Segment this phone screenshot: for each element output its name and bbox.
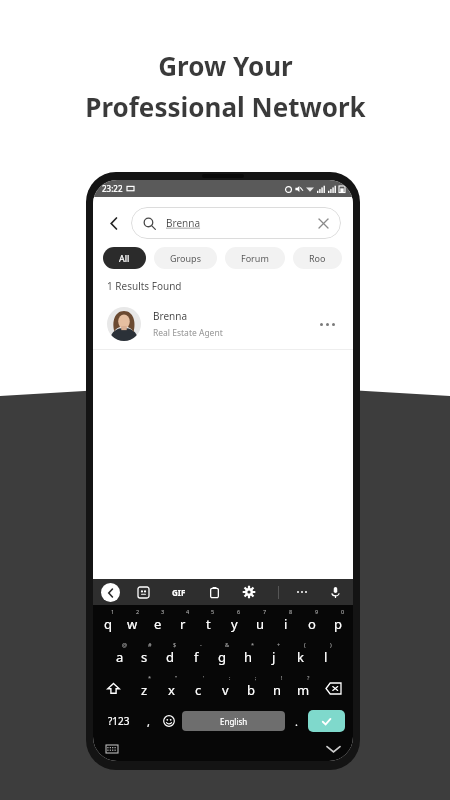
staticText: * [251, 641, 255, 648]
button[interactable]: Emoji [158, 709, 180, 733]
staticText: ?123 [108, 714, 130, 728]
staticText: s [141, 648, 148, 666]
staticText: m [297, 681, 310, 699]
staticText: n [273, 681, 282, 699]
button[interactable]: Hide keyboard [323, 739, 343, 759]
button[interactable]: 1 [95, 609, 120, 635]
button[interactable]: 3 [145, 609, 170, 635]
staticText: 23:22 [102, 183, 123, 194]
staticText: g [218, 648, 226, 666]
staticText: . [295, 714, 298, 729]
staticText: l [324, 648, 328, 666]
button[interactable]: 8 [273, 609, 299, 635]
button[interactable]: * [235, 642, 261, 668]
button[interactable]: Brenna [93, 303, 353, 349]
button[interactable]: Shift [96, 675, 131, 701]
staticText: Brenna [166, 216, 201, 230]
button[interactable]: - [183, 642, 209, 668]
button[interactable]: 9 [299, 609, 325, 635]
staticText: 1 Results Found [107, 279, 182, 293]
button[interactable]: ? [290, 675, 316, 701]
button[interactable]: @ [107, 642, 132, 668]
staticText: k [297, 648, 304, 666]
staticText: t [206, 615, 211, 633]
staticText: h [244, 648, 253, 666]
button[interactable]: # [132, 642, 157, 668]
button[interactable]: $ [157, 642, 183, 668]
button[interactable]: + [261, 642, 287, 668]
button[interactable]: More options [315, 312, 339, 336]
button[interactable]: " [158, 675, 185, 701]
staticText: 4 [186, 608, 190, 615]
staticText: 5 [211, 608, 215, 615]
button[interactable]: 2 [120, 609, 145, 635]
staticText: 6 [237, 608, 241, 615]
staticText: 3 [161, 608, 165, 615]
button[interactable]: . [287, 709, 306, 733]
staticText: f [194, 648, 199, 666]
button[interactable]: Forum [225, 247, 285, 269]
button[interactable]: Settings [239, 582, 259, 602]
staticText: d [166, 648, 174, 666]
button[interactable]: English [182, 711, 285, 731]
staticText: All [119, 252, 130, 264]
staticText: 7 [263, 608, 267, 615]
button[interactable]: 5 [195, 609, 221, 635]
staticText: * [148, 674, 152, 681]
staticText: y [231, 615, 238, 633]
staticText: b [247, 681, 255, 699]
button[interactable]: GIF [169, 587, 189, 598]
button[interactable]: * [131, 675, 158, 701]
staticText: ! [281, 674, 283, 681]
button[interactable]: ' [185, 675, 212, 701]
staticText: Roo [309, 252, 326, 264]
staticText: 2 [136, 608, 140, 615]
staticText: - [200, 641, 202, 648]
staticText: v [222, 681, 229, 699]
staticText: ; [255, 674, 257, 681]
staticText: w [127, 615, 138, 633]
staticText: $ [173, 641, 177, 648]
button[interactable]: ! [264, 675, 290, 701]
button[interactable]: Back [101, 210, 127, 236]
button[interactable]: , [139, 709, 158, 733]
staticText: 0 [341, 608, 345, 615]
staticText: & [225, 641, 230, 648]
staticText: " [175, 674, 178, 681]
button[interactable]: Brenna [131, 207, 341, 239]
button[interactable]: ; [238, 675, 264, 701]
staticText: z [141, 681, 148, 699]
staticText: u [256, 615, 265, 633]
staticText: Grow Your [158, 48, 293, 83]
button[interactable]: 4 [170, 609, 195, 635]
button[interactable]: All [103, 247, 146, 269]
button[interactable]: Groups [154, 247, 217, 269]
button[interactable]: Clipboard [204, 582, 224, 602]
button[interactable]: Switch keyboard [103, 740, 121, 758]
button[interactable]: ) [313, 642, 339, 668]
button[interactable]: & [209, 642, 235, 668]
button[interactable]: Roo [293, 247, 342, 269]
staticText: o [308, 615, 316, 633]
staticText: 9 [315, 608, 319, 615]
staticText: Real Estate Agent [153, 327, 223, 339]
staticText: ' [203, 674, 205, 681]
button[interactable]: Voice input [325, 582, 345, 602]
button[interactable]: 7 [247, 609, 273, 635]
button[interactable]: Enter [308, 710, 345, 732]
button[interactable]: 6 [221, 609, 247, 635]
staticText: c [195, 681, 202, 699]
staticText: x [168, 681, 175, 699]
button[interactable]: More [292, 582, 312, 602]
staticText: j [272, 648, 276, 666]
button[interactable]: ( [287, 642, 313, 668]
button[interactable]: Backspace [316, 675, 350, 701]
button[interactable]: Stickers [133, 582, 153, 602]
button[interactable]: ?123 [99, 709, 139, 733]
button[interactable]: 0 [325, 609, 351, 635]
button[interactable]: : [212, 675, 238, 701]
staticText: : [229, 674, 231, 681]
staticText: q [104, 615, 112, 633]
button[interactable]: Back [101, 583, 120, 602]
staticText: Groups [170, 252, 201, 264]
